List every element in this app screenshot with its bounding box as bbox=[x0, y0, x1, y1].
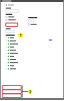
staticText: 1 bbox=[19, 33, 21, 38]
staticText: 2 bbox=[29, 89, 31, 94]
